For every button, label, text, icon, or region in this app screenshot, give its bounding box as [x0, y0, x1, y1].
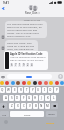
staticText: G	[28, 96, 31, 100]
button[interactable]: Shift	[0, 103, 7, 109]
button[interactable]: Emoji 8	[38, 81, 42, 85]
staticText: R	[20, 88, 22, 92]
button[interactable]: I	[42, 87, 47, 93]
staticText: 9:41	[3, 1, 9, 5]
staticText: Today 9:41 AM	[0, 18, 64, 21]
staticText: C	[23, 104, 25, 108]
button[interactable]: Y	[30, 87, 35, 93]
staticText: return	[48, 113, 55, 116]
staticText: F	[23, 96, 25, 100]
button[interactable]: Emoji 1	[0, 81, 4, 85]
button[interactable]: T	[24, 87, 29, 93]
staticText: D	[16, 96, 19, 100]
button[interactable]: Emoji 12	[60, 81, 64, 85]
button[interactable]	[7, 74, 52, 79]
button[interactable]: 123	[0, 111, 9, 117]
button[interactable]: P	[54, 87, 59, 93]
button[interactable]: H	[33, 95, 38, 101]
button[interactable]: Rose, Dan	[25, 4, 40, 15]
staticText: Y	[32, 88, 34, 92]
staticText: Okay and check. Stay there for a little …	[7, 41, 36, 53]
button[interactable]: Emoji 11	[55, 81, 59, 85]
button[interactable]: Okay and check. Stay there for a little …	[5, 40, 38, 54]
button[interactable]: B	[33, 103, 38, 109]
staticText: 2	[27, 63, 29, 67]
button[interactable]: Emoji 9	[44, 81, 48, 85]
staticText: P	[56, 88, 58, 92]
staticText: U	[37, 88, 40, 92]
staticText: E	[14, 88, 16, 92]
staticText: Q	[1, 88, 4, 92]
button[interactable]: A	[3, 95, 8, 101]
staticText: O	[49, 88, 52, 92]
staticText: iPhone	[46, 121, 55, 124]
button[interactable]: N	[39, 103, 44, 109]
staticText: H	[34, 96, 37, 100]
button[interactable]: W	[6, 87, 11, 93]
staticText: V	[29, 104, 31, 108]
staticText: 1	[19, 63, 21, 67]
button[interactable]: Q	[0, 87, 5, 93]
staticText: S	[11, 96, 13, 100]
staticText: X	[17, 104, 19, 108]
staticText: 4	[31, 63, 33, 67]
staticText: 123	[2, 113, 7, 116]
button[interactable]: Emoji 2	[5, 81, 9, 85]
button[interactable]: space	[10, 111, 44, 117]
staticText: It is learning speed which they want to …	[7, 22, 45, 37]
button[interactable]: Emoji 3	[11, 81, 15, 85]
staticText: T	[26, 88, 28, 92]
button[interactable]: M	[45, 103, 50, 109]
button[interactable]: Emoji 5	[22, 81, 26, 85]
staticText: K	[47, 96, 49, 100]
button[interactable]: S	[9, 95, 14, 101]
staticText: space	[24, 113, 31, 116]
button[interactable]: K	[45, 95, 50, 101]
button[interactable]: C	[21, 103, 26, 109]
staticText: Apple ID Verification Code	[10, 52, 43, 55]
staticText: Rose, Dan	[25, 11, 38, 15]
button[interactable]: Emoji 7	[33, 81, 37, 85]
button[interactable]: Send	[58, 74, 63, 79]
button[interactable]: Backspace	[51, 103, 58, 109]
staticText: L	[53, 96, 55, 100]
button[interactable]: Emoji 6	[27, 81, 31, 85]
staticText: J	[41, 96, 42, 100]
button[interactable]: E	[12, 87, 17, 93]
button[interactable]: Z	[9, 103, 14, 109]
button[interactable]: O	[48, 87, 53, 93]
button[interactable]: Back	[1, 6, 6, 11]
staticText: Use the verification code below to sign …	[10, 56, 47, 62]
button[interactable]: It is learning speed which they want to …	[5, 21, 47, 38]
button[interactable]: D	[15, 95, 20, 101]
staticText: N	[40, 104, 43, 108]
staticText: M	[46, 104, 49, 108]
button[interactable]: R	[18, 87, 23, 93]
button[interactable]: Emoji 4	[16, 81, 20, 85]
staticText: B	[35, 104, 37, 108]
button[interactable]: Camera	[1, 75, 5, 79]
staticText: W	[7, 88, 10, 92]
button[interactable]: J	[39, 95, 44, 101]
button[interactable]: V	[27, 103, 32, 109]
button[interactable]: Apple ID Verification Code	[4, 51, 48, 70]
button[interactable]: Emoji 10	[49, 81, 53, 85]
button[interactable]: U	[36, 87, 41, 93]
staticText: 7	[15, 63, 17, 67]
button[interactable]: return	[46, 111, 57, 117]
button[interactable]: X	[15, 103, 20, 109]
button[interactable]: L	[51, 95, 56, 101]
staticText: A	[5, 96, 7, 100]
staticText: Z	[11, 104, 13, 108]
button[interactable]: G	[27, 95, 32, 101]
staticText: 6	[11, 63, 13, 67]
button[interactable]: Emoji keyboard	[4, 120, 8, 124]
staticText: 9	[23, 63, 25, 67]
button[interactable]: F	[21, 95, 26, 101]
staticText: I	[44, 88, 46, 92]
